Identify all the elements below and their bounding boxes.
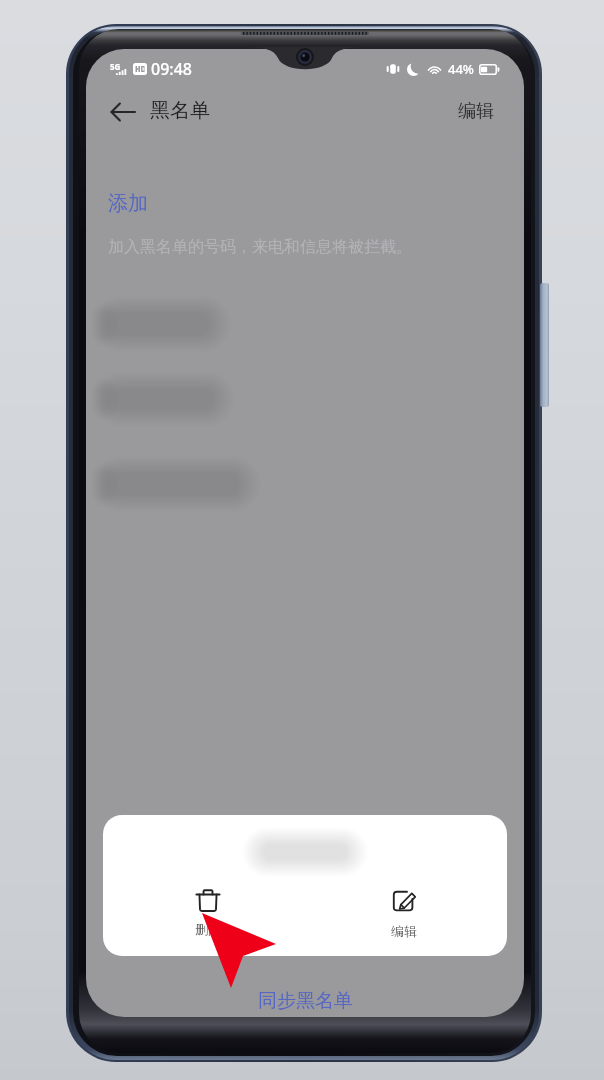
- staticText: 编辑: [391, 923, 417, 939]
- button[interactable]: 添加: [86, 189, 162, 218]
- staticText: 09:48: [151, 58, 192, 80]
- button[interactable]: Edit: [371, 883, 437, 943]
- staticText: 加入黑名单的号码，来电和信息将被拦截。: [108, 237, 412, 257]
- staticText: 添加: [108, 191, 148, 216]
- button[interactable]: Back: [99, 88, 147, 136]
- staticText: 编辑: [458, 100, 494, 123]
- staticText: 44%: [448, 60, 474, 78]
- other: Edit: [389, 887, 419, 917]
- other: Delete: [194, 887, 222, 915]
- staticText: 黑名单: [150, 98, 210, 123]
- button[interactable]: Delete: [176, 883, 240, 941]
- staticText: 5G: [110, 61, 121, 72]
- button[interactable]: 编辑: [444, 91, 508, 132]
- button[interactable]: 同步黑名单: [244, 985, 367, 1017]
- staticText: 删除: [195, 921, 221, 937]
- staticText: 同步黑名单: [258, 989, 353, 1013]
